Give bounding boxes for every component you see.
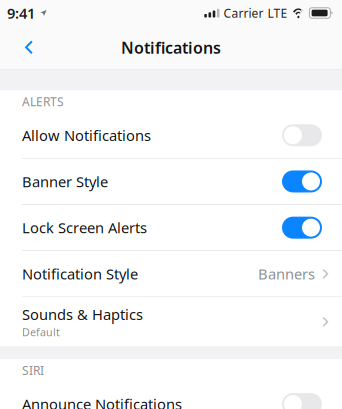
staticText: Default xyxy=(22,325,60,339)
button[interactable]: Sounds & Haptics xyxy=(0,297,342,346)
staticText: Sounds & Haptics xyxy=(22,304,143,324)
button[interactable]: Banner Style xyxy=(0,159,342,204)
button[interactable]: Announce Notifications xyxy=(0,381,342,409)
button[interactable]: Allow Notifications xyxy=(0,112,342,158)
button[interactable]: Lock Screen Alerts xyxy=(0,205,342,250)
staticText: SIRI xyxy=(22,362,44,378)
staticText: Banner Style xyxy=(22,172,108,191)
staticText: Notification Style xyxy=(22,264,138,284)
staticText: Allow Notifications xyxy=(22,125,151,145)
staticText: Notifications xyxy=(121,37,221,58)
staticText: Carrier xyxy=(223,5,263,21)
staticText: LTE xyxy=(267,5,287,21)
button[interactable]: Back xyxy=(14,27,44,67)
button[interactable]: Notification Style xyxy=(0,251,342,297)
staticText: ALERTS xyxy=(22,93,64,109)
staticText: Banners xyxy=(258,264,315,284)
staticText: Lock Screen Alerts xyxy=(22,218,147,237)
staticText: 9:41 xyxy=(7,3,35,23)
staticText: Announce Notifications xyxy=(22,394,182,409)
